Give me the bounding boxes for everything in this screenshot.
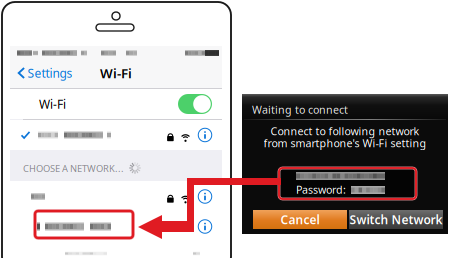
button[interactable]: Settings xyxy=(10,60,72,86)
staticText: Wi-Fi xyxy=(100,64,132,82)
staticText: Cancel xyxy=(280,211,319,227)
staticText: Switch Network xyxy=(349,211,442,227)
button[interactable]: Switch Network xyxy=(349,210,443,229)
staticText: Wi-Fi xyxy=(39,96,66,112)
staticText: from smartphone's Wi-Fi setting xyxy=(263,136,426,150)
button[interactable] xyxy=(10,120,222,150)
staticText: Connect to following network xyxy=(270,124,419,138)
button[interactable]: Cancel xyxy=(253,210,347,229)
staticText: Password: xyxy=(296,182,346,197)
staticText: Settings xyxy=(27,65,72,81)
staticText: Waiting to connect xyxy=(252,102,348,117)
button[interactable]: Wi-Fi on xyxy=(178,94,212,114)
button[interactable] xyxy=(10,181,222,212)
button[interactable] xyxy=(10,212,222,241)
staticText: CHOOSE A NETWORK... xyxy=(23,162,124,175)
